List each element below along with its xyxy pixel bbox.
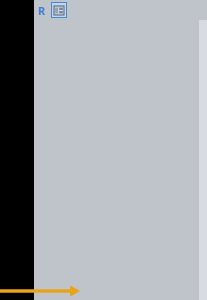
button[interactable]: Revit home	[35, 1, 49, 19]
staticText: R	[38, 3, 46, 18]
button[interactable]: Panel view	[51, 2, 67, 18]
button[interactable]: Back	[25, 33, 49, 57]
button[interactable]: Sample Project	[64, 282, 187, 298]
